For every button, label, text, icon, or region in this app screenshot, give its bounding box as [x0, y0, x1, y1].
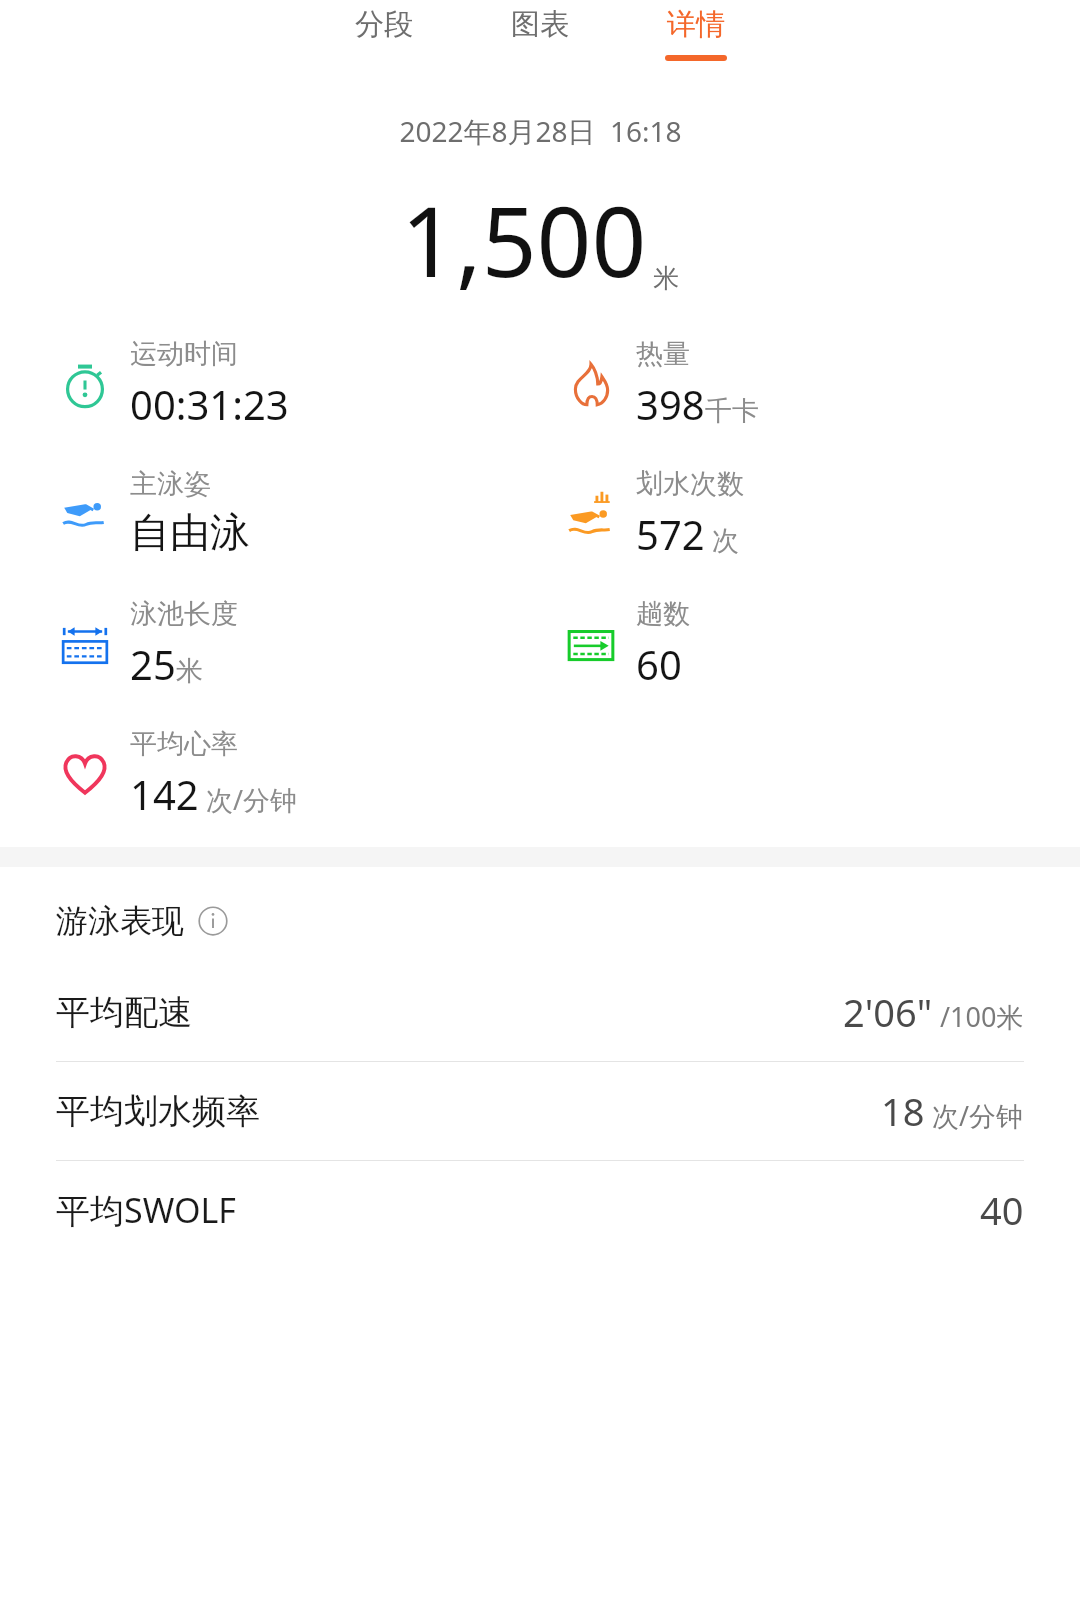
staticText: 平均划水频率	[56, 1090, 260, 1133]
staticText: 趟数	[636, 597, 690, 631]
staticText: 分段	[355, 6, 413, 43]
button[interactable]: 主泳姿	[56, 467, 258, 557]
staticText: 主泳姿	[130, 467, 211, 501]
staticText: 00:31:23	[130, 377, 289, 431]
staticText: 图表	[511, 6, 569, 43]
button[interactable]: 泳池长度	[56, 597, 246, 691]
staticText: 次/分钟	[199, 781, 298, 818]
staticText: 米	[653, 262, 679, 295]
staticText: 平均心率	[130, 727, 238, 761]
button[interactable]: 运动时间	[56, 337, 297, 431]
staticText: 平均SWOLF	[56, 1187, 236, 1233]
button[interactable]: 平均心率	[56, 727, 306, 821]
staticText: /100米	[933, 998, 1024, 1035]
staticText: 25	[130, 637, 176, 691]
staticText: 572	[636, 507, 705, 561]
button[interactable]: 平均划水频率	[0, 1062, 1080, 1161]
staticText: 142	[130, 767, 199, 821]
staticText: 40	[980, 1184, 1024, 1236]
staticText: 详情	[667, 6, 725, 43]
staticText: 1,500	[401, 174, 647, 305]
staticText: 热量	[636, 337, 690, 371]
button[interactable]: 平均配速	[0, 963, 1080, 1062]
staticText: 次/分钟	[925, 1097, 1024, 1134]
staticText: 运动时间	[130, 337, 238, 371]
staticText: 泳池长度	[130, 597, 238, 631]
button[interactable]: 热量	[562, 337, 767, 431]
staticText: 次	[705, 521, 740, 558]
button[interactable]: 平均SWOLF	[0, 1161, 1080, 1259]
staticText: 千卡	[705, 394, 759, 428]
staticText: 自由泳	[130, 507, 250, 557]
staticText: 2022年8月28日 16:18	[399, 112, 682, 150]
staticText: 18	[881, 1085, 925, 1137]
button[interactable]: 趟数	[562, 597, 698, 691]
button[interactable]: 划水次数	[562, 467, 752, 561]
staticText: 划水次数	[636, 467, 744, 501]
button[interactable]: 分段	[343, 0, 425, 67]
staticText: 米	[176, 654, 203, 688]
staticText: 游泳表现	[56, 901, 184, 941]
staticText: 2'06"	[843, 986, 933, 1038]
button[interactable]: 详情	[655, 0, 737, 67]
staticText: 60	[636, 637, 682, 691]
staticText: 平均配速	[56, 991, 192, 1034]
staticText: 398	[636, 377, 705, 431]
button[interactable]: 关于游泳表现	[196, 904, 230, 938]
button[interactable]: 图表	[499, 0, 581, 67]
